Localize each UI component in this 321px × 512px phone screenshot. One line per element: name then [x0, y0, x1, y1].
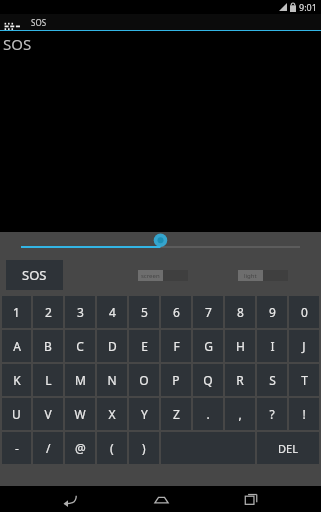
staticText: C: [76, 338, 84, 354]
button[interactable]: U: [2, 398, 31, 430]
button[interactable]: N: [97, 364, 127, 396]
button[interactable]: 4: [97, 296, 127, 328]
button[interactable]: F: [161, 330, 191, 362]
staticText: SOS: [3, 34, 32, 54]
other: SOS app icon: [3, 15, 25, 30]
staticText: J: [302, 338, 306, 354]
button[interactable]: B: [33, 330, 63, 362]
button[interactable]: 2: [33, 296, 63, 328]
staticText: ?: [269, 406, 275, 422]
staticText: T: [301, 372, 308, 388]
button[interactable]: @: [65, 432, 95, 464]
button[interactable]: 6: [161, 296, 191, 328]
staticText: G: [204, 338, 213, 354]
staticText: ): [142, 440, 146, 456]
staticText: L: [45, 372, 52, 388]
staticText: .: [206, 406, 210, 422]
staticText: O: [139, 372, 149, 388]
button[interactable]: G: [193, 330, 223, 362]
button[interactable]: E: [129, 330, 159, 362]
button[interactable]: D: [97, 330, 127, 362]
staticText: /: [46, 440, 51, 456]
button[interactable]: R: [225, 364, 255, 396]
staticText: SOS: [31, 17, 47, 28]
staticText: 0: [301, 304, 308, 320]
staticText: 5: [141, 304, 148, 320]
staticText: P: [172, 372, 180, 388]
button[interactable]: Q: [193, 364, 223, 396]
button[interactable]: .: [193, 398, 223, 430]
staticText: 6: [173, 304, 180, 320]
button[interactable]: Z: [161, 398, 191, 430]
staticText: -: [15, 440, 19, 456]
button[interactable]: Back: [46, 486, 92, 512]
staticText: light: [244, 272, 257, 280]
button[interactable]: O: [129, 364, 159, 396]
button[interactable]: 9: [257, 296, 287, 328]
button[interactable]: ): [129, 432, 159, 464]
button[interactable]: -: [2, 432, 31, 464]
staticText: 3: [77, 304, 84, 320]
staticText: R: [236, 372, 244, 388]
staticText: 9:01: [299, 1, 317, 13]
button[interactable]: I: [257, 330, 287, 362]
staticText: @: [75, 440, 86, 456]
button[interactable]: !: [289, 398, 319, 430]
button[interactable]: ?: [257, 398, 287, 430]
button[interactable]: Speed slider: [0, 232, 321, 257]
button[interactable]: (: [97, 432, 127, 464]
staticText: 8: [237, 304, 244, 320]
button[interactable]: screen: [138, 270, 188, 281]
button[interactable]: J: [289, 330, 319, 362]
button[interactable]: DEL: [257, 432, 319, 464]
staticText: N: [107, 372, 117, 388]
button[interactable]: T: [289, 364, 319, 396]
staticText: 2: [45, 304, 52, 320]
staticText: !: [302, 406, 306, 422]
staticText: K: [13, 372, 21, 388]
staticText: X: [108, 406, 116, 422]
staticText: (: [110, 440, 114, 456]
staticText: W: [74, 406, 86, 422]
button[interactable]: C: [65, 330, 95, 362]
button[interactable]: light: [238, 270, 288, 281]
staticText: 7: [205, 304, 212, 320]
button[interactable]: Y: [129, 398, 159, 430]
button[interactable]: 8: [225, 296, 255, 328]
button[interactable]: /: [33, 432, 63, 464]
button[interactable]: 7: [193, 296, 223, 328]
staticText: E: [141, 338, 148, 354]
button[interactable]: P: [161, 364, 191, 396]
button[interactable]: 3: [65, 296, 95, 328]
button[interactable]: SOS: [6, 260, 63, 290]
staticText: screen: [141, 272, 160, 280]
staticText: D: [108, 338, 117, 354]
button[interactable]: 5: [129, 296, 159, 328]
staticText: Q: [203, 372, 213, 388]
button[interactable]: X: [97, 398, 127, 430]
button[interactable]: 0: [289, 296, 319, 328]
staticText: S: [269, 372, 276, 388]
button[interactable]: L: [33, 364, 63, 396]
button[interactable]: ,: [225, 398, 255, 430]
staticText: 4: [109, 304, 116, 320]
button[interactable]: S: [257, 364, 287, 396]
button[interactable]: V: [33, 398, 63, 430]
staticText: 1: [13, 304, 20, 320]
button[interactable]: Home: [138, 486, 184, 512]
button[interactable]: M: [65, 364, 95, 396]
staticText: Y: [141, 406, 148, 422]
button[interactable]: K: [2, 364, 31, 396]
button[interactable]: 1: [2, 296, 31, 328]
staticText: M: [75, 372, 86, 388]
button[interactable]: H: [225, 330, 255, 362]
button[interactable]: W: [65, 398, 95, 430]
button[interactable]: Recent apps: [229, 486, 275, 512]
staticText: 9: [269, 304, 276, 320]
staticText: ,: [238, 406, 242, 422]
staticText: U: [12, 406, 21, 422]
staticText: DEL: [278, 441, 298, 456]
staticText: SOS: [22, 266, 47, 284]
button[interactable]: A: [2, 330, 31, 362]
